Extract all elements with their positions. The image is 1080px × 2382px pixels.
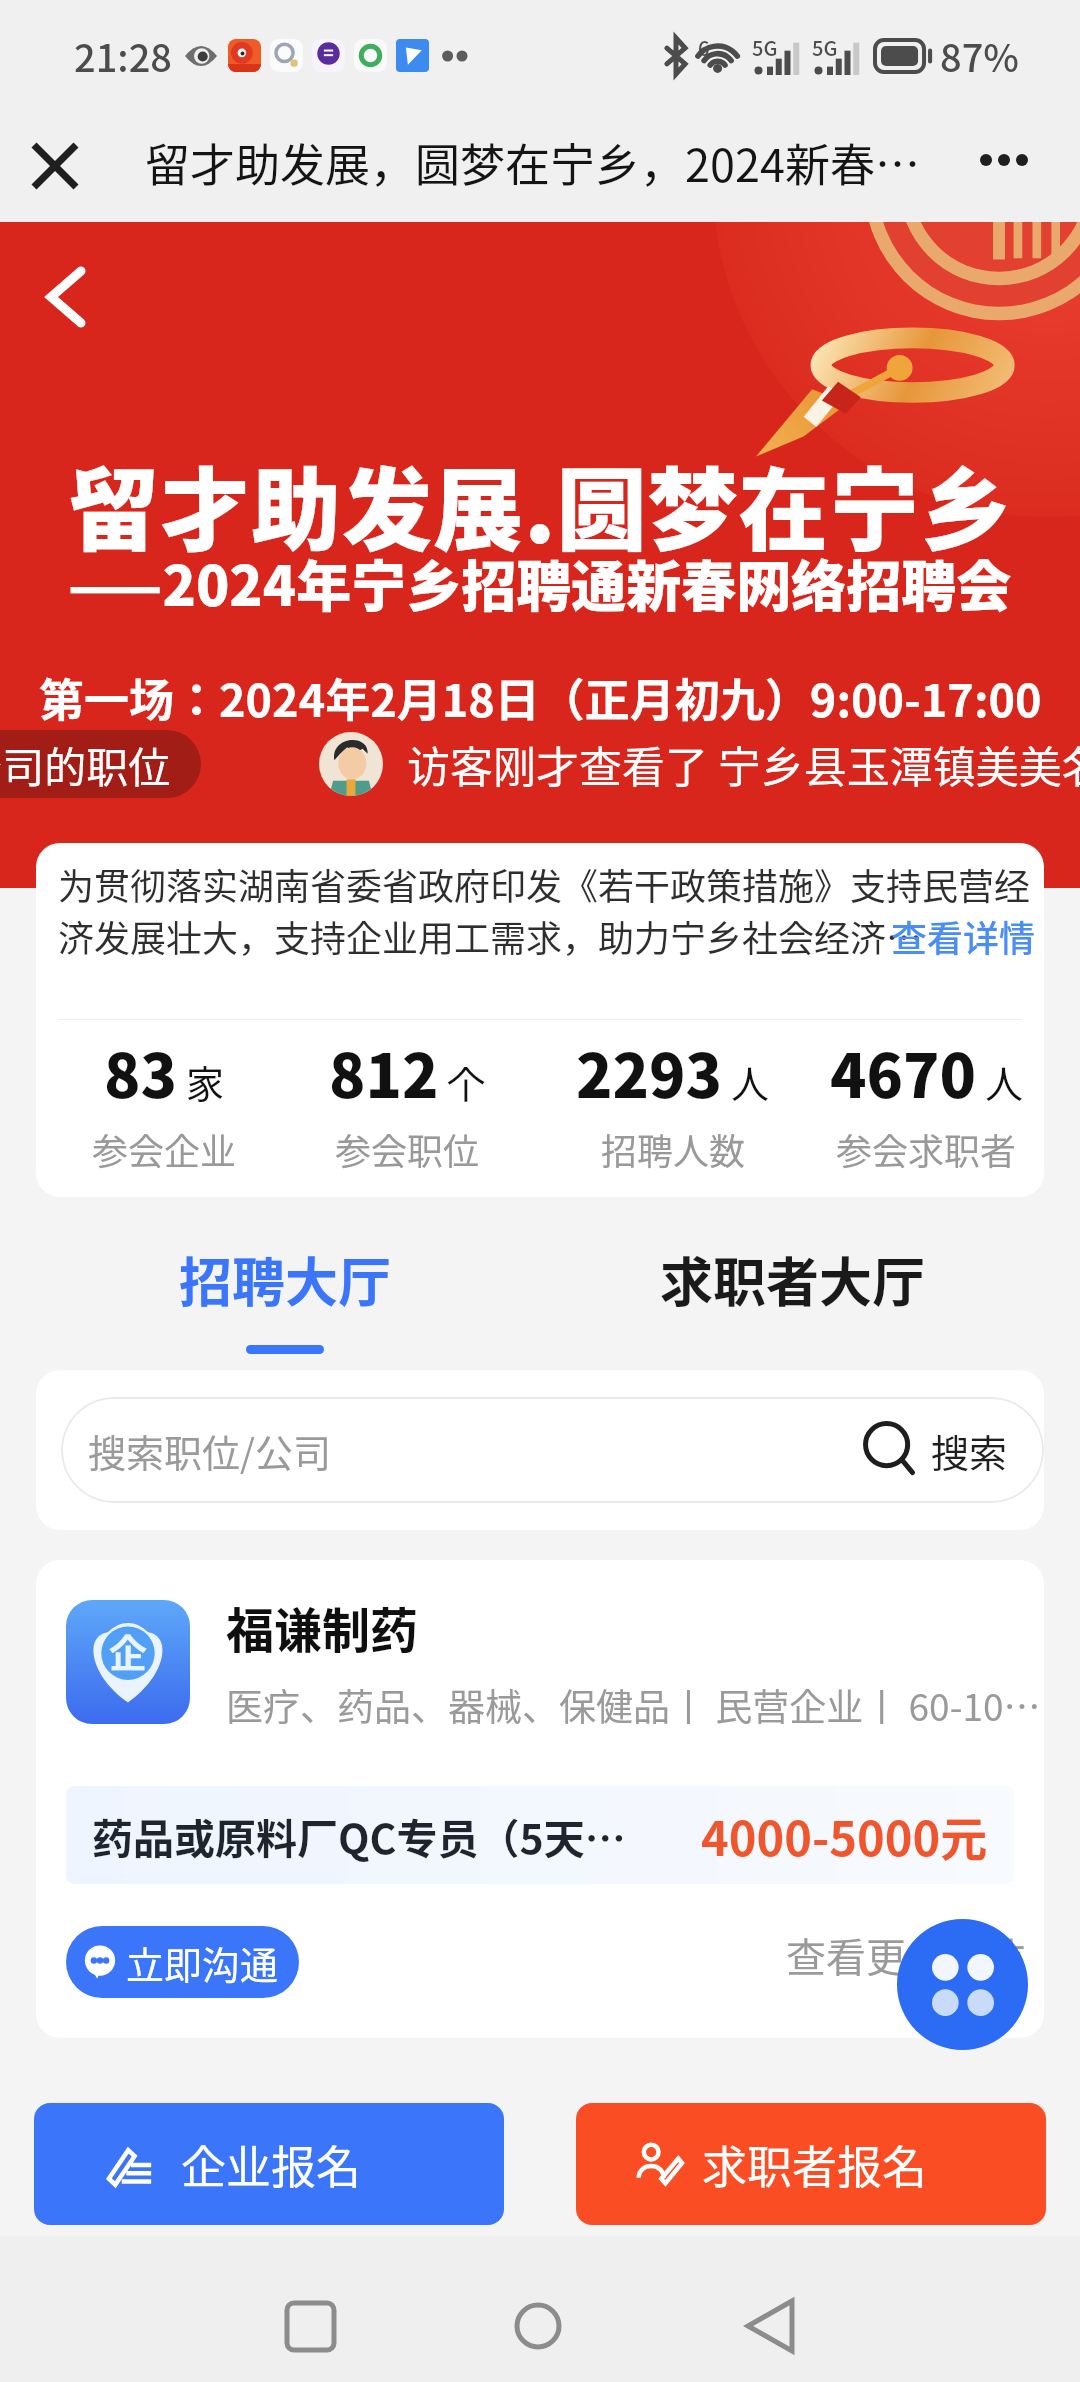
button[interactable]: 求职者报名 <box>576 2103 1046 2225</box>
button[interactable]: 查看更多职位 <box>786 1926 1026 1984</box>
staticText: 人 <box>731 1054 770 1109</box>
staticText: 812 <box>329 1028 439 1115</box>
staticText: 2293 <box>576 1028 723 1115</box>
staticText: 企业报名 <box>181 2132 362 2197</box>
staticText: 搜索 <box>931 1423 1008 1478</box>
button[interactable]: 招聘大厅 <box>15 1228 555 1354</box>
staticText: 搜索职位/公司 <box>88 1423 865 1478</box>
button[interactable]: Recents <box>250 2266 370 2382</box>
staticText: 企 <box>109 1623 148 1678</box>
button[interactable]: Apps menu <box>897 1919 1028 2050</box>
staticText: 参会求职者 <box>836 1123 1017 1175</box>
staticText: 福谦制药 <box>226 1592 419 1662</box>
staticText: 6 <box>698 33 710 62</box>
button[interactable]: 求职者大厅 <box>522 1228 1062 1354</box>
staticText: 人 <box>985 1054 1024 1109</box>
staticText: 参会职位 <box>335 1123 480 1175</box>
staticText: 5G <box>812 33 838 62</box>
staticText: 求职者大厅 <box>660 1241 925 1318</box>
button[interactable]: Back <box>710 2266 830 2382</box>
staticText: ——2024年宁乡招聘通新春网络招聘会 <box>68 542 1012 622</box>
button[interactable]: Home <box>478 2266 598 2382</box>
staticText: 济发展壮大，支持企业用工需求，助力宁乡社会经济… <box>58 910 923 962</box>
button[interactable]: 企业报名 <box>34 2103 504 2225</box>
staticText: 第一场：2024年2月18日（正月初九）9:00-17:00 <box>39 665 1042 730</box>
staticText: 医疗、药品、器械、保健品丨 民营企业丨 60-10… <box>226 1678 1014 1732</box>
staticText: 个 <box>447 1054 486 1109</box>
button[interactable]: Close <box>22 133 88 199</box>
button[interactable]: 搜索职位/公司 <box>61 1397 1044 1503</box>
staticText: 为贯彻落实湖南省委省政府印发《若干政策措施》支持民营经 <box>58 858 1022 910</box>
staticText: 留才助发展，圆梦在宁乡，2024新春… <box>145 130 920 195</box>
button[interactable]: 立即沟通 <box>66 1926 299 1998</box>
staticText: 访客刚才查看了 宁乡县玉潭镇美美名媛生 <box>407 733 1080 795</box>
button[interactable]: More options <box>969 125 1039 195</box>
button[interactable]: 药品或原料厂QC专员（5天… <box>66 1786 1014 1884</box>
staticText: 求职者报名 <box>702 2132 928 2197</box>
staticText: 招聘大厅 <box>179 1241 391 1318</box>
staticText: 4000-5000元 <box>701 1801 988 1869</box>
staticText: 留才助发展.圆梦在宁乡 <box>69 439 1012 569</box>
staticText: 4670 <box>830 1028 977 1115</box>
staticText: 21:28 <box>74 28 172 83</box>
staticText: 招聘人数 <box>601 1123 746 1175</box>
staticText: 立即沟通 <box>126 1935 279 1990</box>
staticText: 家 <box>186 1054 225 1109</box>
staticText: 药品或原料厂QC专员（5天… <box>92 1806 701 1865</box>
button[interactable]: Back <box>30 262 100 332</box>
staticText: 查看详情 <box>891 910 990 962</box>
staticText: XX公司的职位 <box>0 734 171 795</box>
staticText: 87% <box>940 28 1020 83</box>
staticText: 参会企业 <box>92 1123 237 1175</box>
staticText: 83 <box>104 1028 178 1115</box>
staticText: 5G <box>752 33 778 62</box>
